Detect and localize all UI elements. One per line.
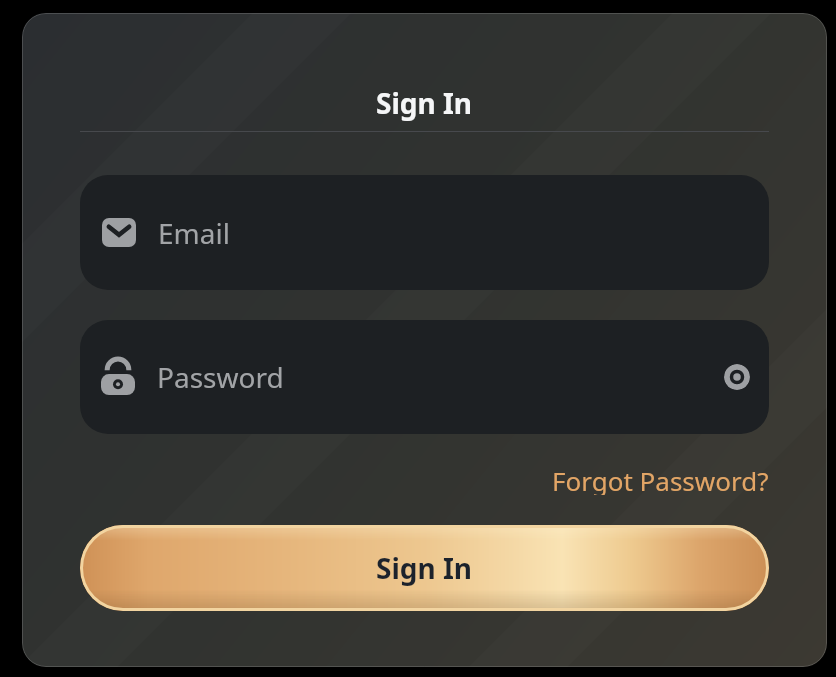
staticText: Forgot Password? (552, 463, 769, 495)
staticText: Sign In (376, 549, 473, 587)
button[interactable]: Sign In (80, 525, 769, 611)
button[interactable]: Email (80, 175, 769, 290)
staticText: Sign In (376, 84, 473, 122)
button[interactable] (724, 364, 750, 390)
button[interactable]: Forgot Password? (552, 463, 769, 495)
staticText: Password (157, 358, 284, 396)
staticText: Email (158, 214, 230, 252)
button[interactable]: Password (80, 320, 769, 434)
